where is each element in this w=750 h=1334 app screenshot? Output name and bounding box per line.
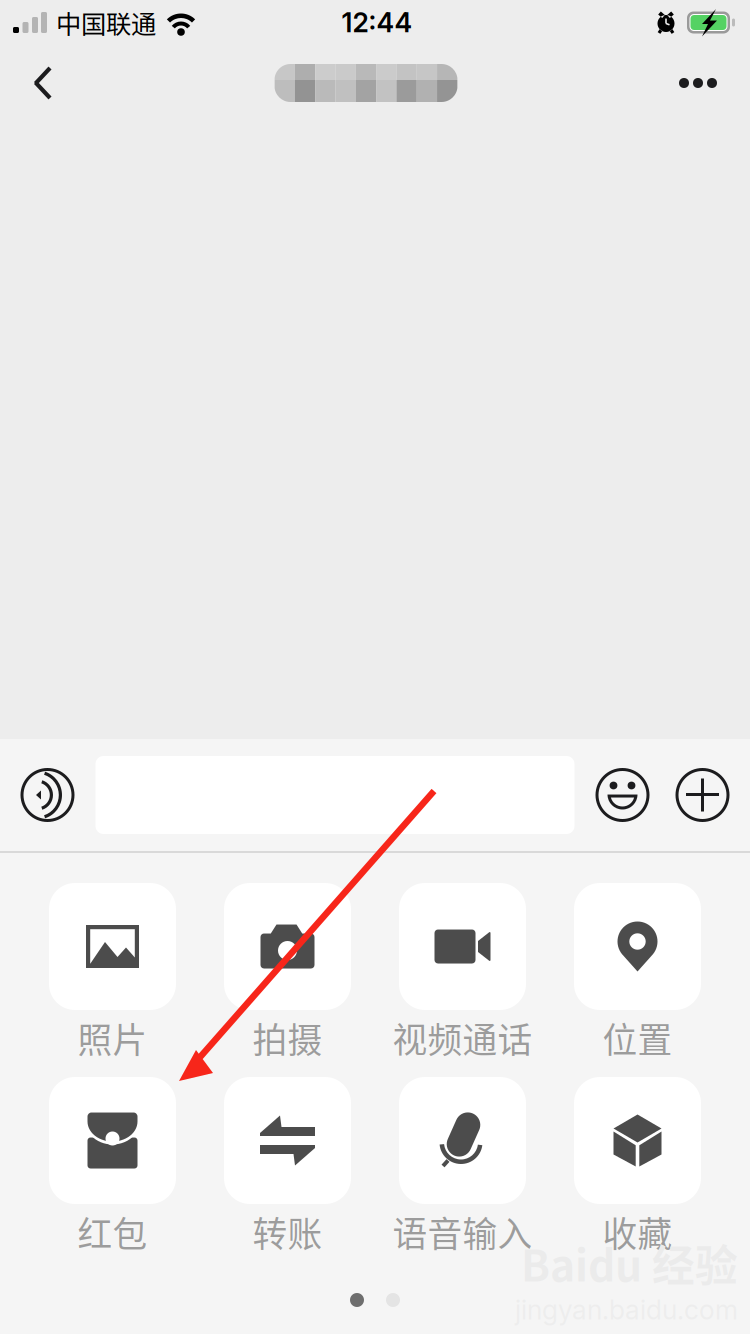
button[interactable]: More actions — [662, 740, 742, 850]
button[interactable]: 收藏 — [574, 1077, 701, 1249]
button[interactable]: 照片 — [49, 883, 176, 1055]
staticText: 中国联通 — [56, 4, 156, 41]
button[interactable]: More — [646, 45, 750, 121]
button[interactable]: 位置 — [574, 883, 701, 1055]
button[interactable]: 语音输入 — [399, 1077, 526, 1249]
staticText: 转账 — [252, 1207, 322, 1257]
button[interactable]: Voice message — [0, 740, 95, 850]
staticText: 拍摄 — [252, 1013, 322, 1063]
staticText: 位置 — [602, 1013, 672, 1063]
staticText: 收藏 — [602, 1207, 672, 1257]
button[interactable]: 转账 — [224, 1077, 351, 1249]
button[interactable]: Back — [0, 45, 86, 121]
staticText: 视频通话 — [392, 1013, 532, 1063]
button[interactable]: 视频通话 — [399, 883, 526, 1055]
staticText: 照片 — [77, 1013, 147, 1063]
staticText: 12:44 — [341, 6, 412, 39]
button[interactable]: Emoji — [582, 740, 662, 850]
staticText: 语音输入 — [392, 1207, 532, 1257]
staticText: 红包 — [77, 1207, 147, 1257]
staticText: Baidu 经验 — [521, 1232, 738, 1294]
button[interactable]: 红包 — [49, 1077, 176, 1249]
button[interactable]: Message input field — [95, 756, 574, 834]
button[interactable]: 拍摄 — [224, 883, 351, 1055]
